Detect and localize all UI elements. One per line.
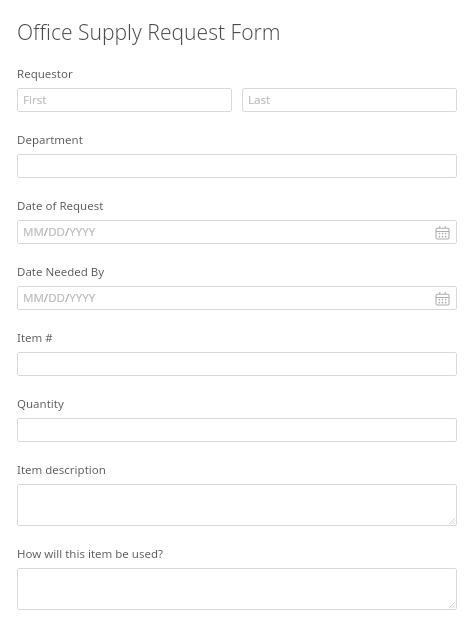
staticText: Date Needed By xyxy=(17,264,105,280)
staticText: Quantity xyxy=(17,396,64,412)
button[interactable] xyxy=(17,568,457,610)
staticText: Department xyxy=(17,132,83,148)
staticText: Office Supply Request Form xyxy=(17,18,281,47)
button[interactable]: Open calendar picker xyxy=(433,223,451,241)
button[interactable]: MM/DD/YYYY xyxy=(17,286,457,310)
staticText: MM/DD/YYYY xyxy=(23,290,96,306)
staticText: Item description xyxy=(17,462,106,478)
button[interactable]: Last xyxy=(242,88,457,112)
staticText: Date of Request xyxy=(17,198,104,214)
staticText: First xyxy=(23,92,47,108)
staticText: How will this item be used? xyxy=(17,546,163,562)
staticText: Item # xyxy=(17,330,53,346)
button[interactable]: MM/DD/YYYY xyxy=(17,220,457,244)
button[interactable] xyxy=(17,352,457,376)
button[interactable]: Open calendar picker xyxy=(433,289,451,307)
staticText: Requestor xyxy=(17,66,73,82)
button[interactable] xyxy=(17,418,457,442)
button[interactable] xyxy=(17,484,457,526)
staticText: Last xyxy=(248,92,271,108)
button[interactable] xyxy=(17,154,457,178)
button[interactable]: First xyxy=(17,88,232,112)
staticText: MM/DD/YYYY xyxy=(23,224,96,240)
